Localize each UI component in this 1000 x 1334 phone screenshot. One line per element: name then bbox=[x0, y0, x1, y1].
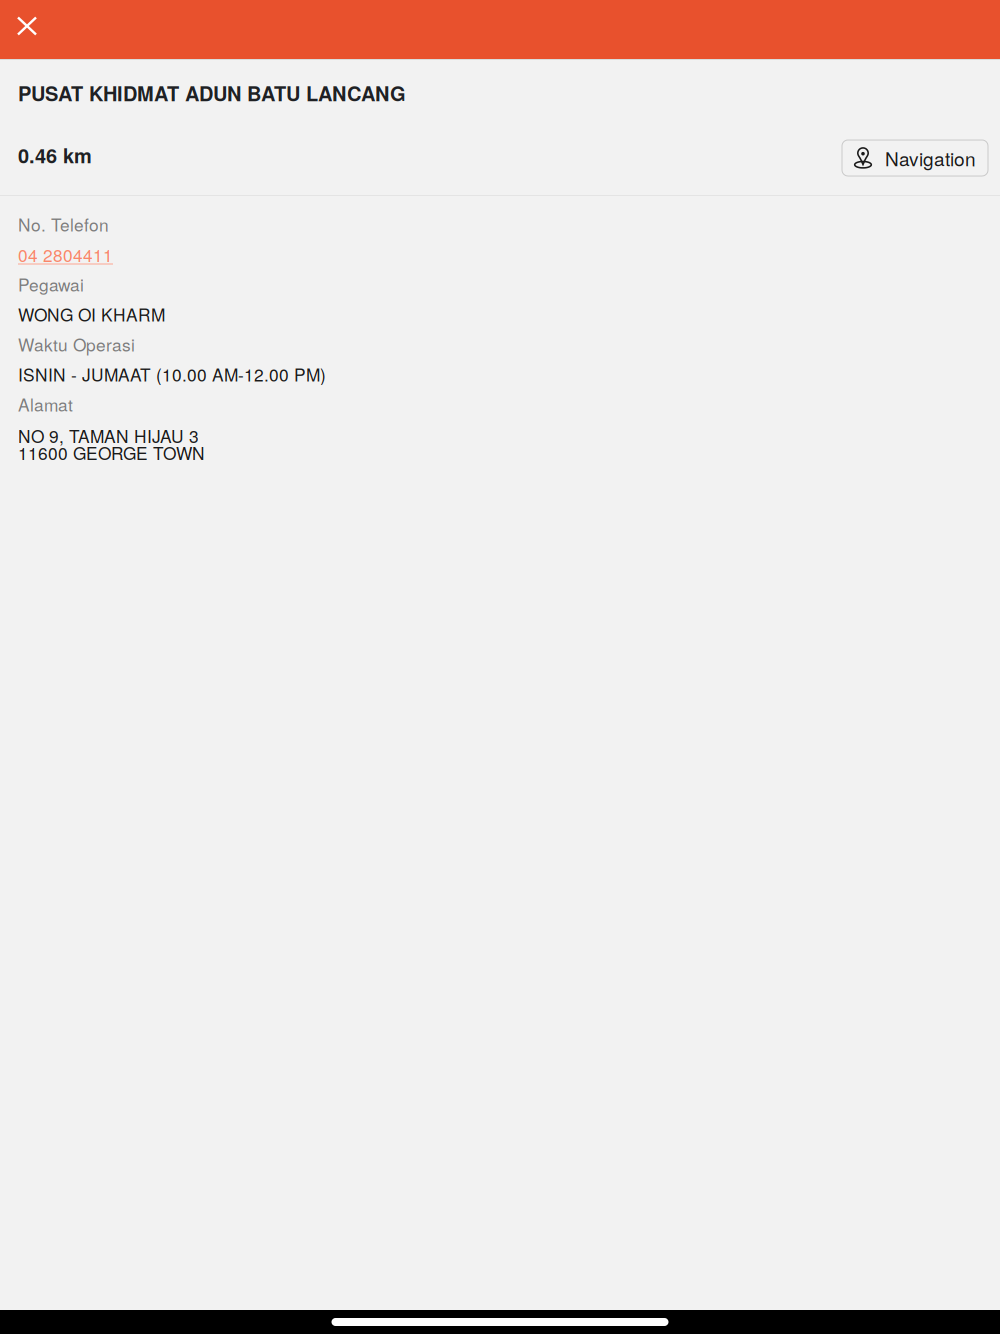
button[interactable]: 04 2804411 bbox=[18, 243, 113, 264]
staticText: Pegawai bbox=[18, 272, 84, 296]
staticText: 11600 GEORGE TOWN bbox=[18, 440, 205, 465]
staticText: Alamat bbox=[18, 392, 73, 416]
staticText: ISNIN - JUMAAT (10.00 AM-12.00 PM) bbox=[18, 362, 326, 386]
staticText: 0.46 km bbox=[18, 141, 92, 169]
button[interactable]: Navigation bbox=[842, 140, 988, 176]
staticText: PUSAT KHIDMAT ADUN BATU LANCANG bbox=[18, 79, 406, 107]
staticText: Waktu Operasi bbox=[18, 332, 135, 356]
button[interactable]: Close bbox=[5, 4, 49, 48]
staticText: NO 9, TAMAN HIJAU 3 bbox=[18, 423, 199, 448]
staticText: 04 2804411 bbox=[18, 242, 113, 267]
staticText: WONG OI KHARM bbox=[18, 302, 165, 326]
staticText: No. Telefon bbox=[18, 212, 109, 236]
staticText: Navigation bbox=[885, 144, 976, 172]
